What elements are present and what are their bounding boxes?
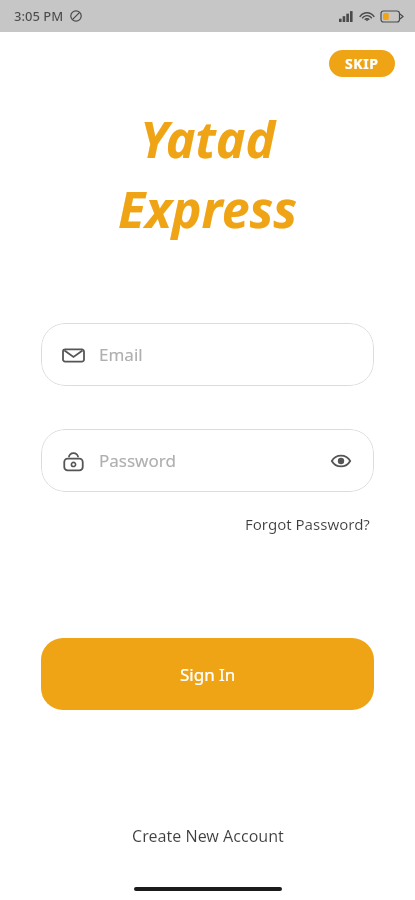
staticText: Forgot Password?: [245, 514, 370, 534]
staticText: 3:05 PM: [14, 7, 64, 25]
button[interactable]: Create New Account: [122, 819, 294, 853]
button[interactable]: Email: [41, 323, 374, 386]
staticText: Create New Account: [132, 825, 284, 847]
staticText: Express: [118, 175, 298, 243]
button[interactable]: SKIP: [329, 50, 395, 77]
staticText: Sign In: [180, 663, 236, 686]
staticText: Yatad: [140, 105, 276, 173]
staticText: Email: [99, 343, 354, 366]
button[interactable]: Show password: [328, 448, 354, 474]
button[interactable]: Password: [41, 429, 374, 492]
button[interactable]: Sign In: [41, 638, 374, 710]
staticText: Password: [99, 449, 328, 472]
staticText: SKIP: [345, 54, 379, 73]
button[interactable]: Forgot Password?: [241, 510, 374, 538]
